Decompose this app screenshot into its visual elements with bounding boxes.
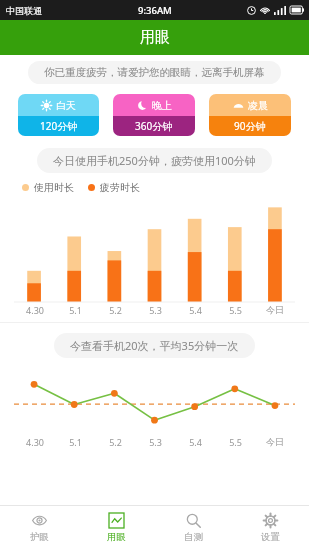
button[interactable]: 凌晨 [209,94,291,136]
staticText: 凌晨 [248,99,268,112]
staticText: 360分钟 [135,119,173,133]
staticText: 5.4 [189,436,202,448]
staticText: 5.3 [149,304,162,316]
staticText: 5.3 [149,436,162,448]
staticText: 今查看手机20次，平均35分钟一次 [70,338,239,353]
staticText: 白天 [56,99,76,112]
staticText: 5.2 [109,304,122,316]
staticText: 疲劳时长 [100,181,140,194]
staticText: 5.1 [69,304,82,316]
button[interactable]: 白天 [18,94,99,136]
staticText: 设置 [261,531,280,543]
staticText: 护眼 [30,531,49,543]
staticText: 使用时长 [34,181,74,194]
staticText: 5.4 [189,304,202,316]
staticText: 用眼 [107,531,126,543]
staticText: 5.2 [109,436,122,448]
button[interactable]: 今查看手机20次，平均35分钟一次 [54,333,255,358]
staticText: 今日使用手机250分钟，疲劳使用100分钟 [53,153,256,168]
button[interactable]: 设置 [232,506,309,550]
staticText: 中国联通 [6,5,42,16]
staticText: 今日 [266,304,284,315]
button[interactable]: 用眼 [78,506,155,550]
staticText: 5.1 [69,436,82,448]
staticText: 自测 [184,531,203,543]
staticText: 5.5 [229,436,242,448]
staticText: 90分钟 [234,119,266,133]
button[interactable]: 护眼 [0,506,78,550]
staticText: 120分钟 [40,119,78,133]
staticText: 晚上 [152,99,172,112]
other: 护眼 [32,513,47,528]
staticText: 9:36AM [138,4,172,17]
staticText: 今日 [266,436,284,447]
other: 设置 [263,513,278,528]
other: 自测 [186,513,201,528]
staticText: 4.30 [26,304,44,316]
staticText: 4.30 [26,436,44,448]
button[interactable]: 自测 [155,506,232,550]
staticText: 用眼 [140,28,170,47]
button[interactable]: 晚上 [113,94,195,136]
staticText: 5.5 [229,304,242,316]
button[interactable]: 今日使用手机250分钟，疲劳使用100分钟 [37,148,272,173]
other: 用眼 [109,513,124,528]
staticText: 你已重度疲劳，请爱护您的眼睛，远离手机屏幕 [44,66,265,79]
button[interactable]: 你已重度疲劳，请爱护您的眼睛，远离手机屏幕 [28,61,281,84]
